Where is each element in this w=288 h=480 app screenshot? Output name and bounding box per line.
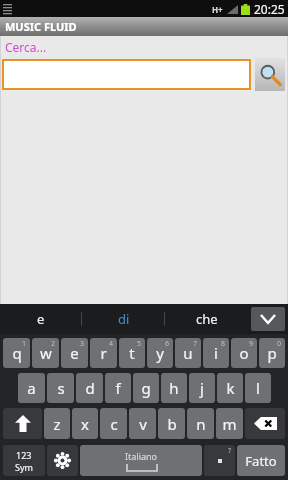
button[interactable]: Cerca <box>255 58 285 91</box>
staticText: z <box>53 414 61 434</box>
button[interactable]: di <box>82 304 165 334</box>
staticText: j <box>200 378 204 398</box>
staticText: p <box>267 343 277 363</box>
button[interactable]: m <box>216 408 243 439</box>
staticText: b <box>167 414 177 434</box>
button[interactable]: l <box>245 373 271 403</box>
button[interactable]: y <box>147 338 173 368</box>
button[interactable]: u <box>175 338 201 368</box>
button[interactable]: b <box>158 408 185 439</box>
button[interactable]: n <box>187 408 214 439</box>
staticText: che <box>196 310 218 328</box>
staticText: f <box>115 378 121 398</box>
button[interactable]: w <box>32 338 59 368</box>
button[interactable]: j <box>189 373 215 403</box>
staticText: Fatto <box>245 452 277 470</box>
staticText: 6 <box>165 339 170 349</box>
button[interactable]: Impostazioni <box>47 445 78 476</box>
button[interactable]: r <box>90 338 117 368</box>
staticText: u <box>183 343 193 363</box>
staticText: i <box>214 343 218 363</box>
staticText: e <box>37 310 45 328</box>
staticText: 7 <box>193 339 198 349</box>
button[interactable]: x <box>72 408 98 439</box>
staticText: s <box>57 378 65 398</box>
button[interactable]: z <box>44 408 70 439</box>
staticText: x <box>81 414 89 434</box>
staticText: h <box>169 378 179 398</box>
button[interactable]: c <box>100 408 127 439</box>
staticText: w <box>40 343 52 363</box>
staticText: 123 <box>16 449 32 461</box>
staticText: l <box>256 378 260 398</box>
button[interactable]: Spazio <box>80 445 202 476</box>
button[interactable]: Punto <box>204 445 235 476</box>
staticText: 1 <box>22 339 27 349</box>
staticText: v <box>139 414 147 434</box>
staticText: 0 <box>277 339 282 349</box>
staticText: 8 <box>221 339 226 349</box>
button[interactable]: e <box>61 338 88 368</box>
staticText: 9 <box>249 339 254 349</box>
button[interactable]: Altri suggerimenti <box>251 307 285 331</box>
staticText: d <box>85 378 95 398</box>
staticText: di <box>118 310 130 328</box>
staticText: g <box>141 378 151 398</box>
staticText: Sym <box>15 461 33 473</box>
button[interactable]: Fatto <box>237 445 285 476</box>
button[interactable]: q <box>3 338 30 368</box>
button[interactable]: h <box>161 373 187 403</box>
button[interactable]: t <box>119 338 145 368</box>
staticText: 3 <box>80 339 85 349</box>
staticText: y <box>156 343 164 363</box>
staticText: Cerca... <box>5 39 47 55</box>
button[interactable]: s <box>47 373 74 403</box>
staticText: q <box>12 343 22 363</box>
staticText: n <box>196 414 206 434</box>
button[interactable]: Maiuscole <box>3 408 42 439</box>
staticText: 20:25 <box>254 1 285 17</box>
staticText: m <box>222 414 237 434</box>
staticText: H+ <box>212 4 223 15</box>
button[interactable]: che <box>165 304 248 334</box>
button[interactable]: d <box>76 373 103 403</box>
staticText: e <box>70 343 79 363</box>
staticText: t <box>129 343 135 363</box>
button[interactable]: a <box>18 373 45 403</box>
staticText: 2 <box>51 339 56 349</box>
button[interactable]: i <box>203 338 229 368</box>
button[interactable]: p <box>259 338 285 368</box>
staticText: r <box>100 343 107 363</box>
button[interactable]: e <box>0 304 82 334</box>
staticText: 5 <box>137 339 142 349</box>
staticText: c <box>110 414 118 434</box>
button[interactable]: g <box>133 373 159 403</box>
staticText: a <box>27 378 36 398</box>
button[interactable]: Simboli <box>3 445 45 476</box>
staticText: Italiano <box>125 450 158 462</box>
staticText: ? <box>228 446 232 456</box>
button[interactable]: f <box>105 373 131 403</box>
staticText: MUSIC FLUID <box>5 19 77 34</box>
button[interactable]: Backspace <box>245 408 285 439</box>
button[interactable]: v <box>129 408 156 439</box>
staticText: 4 <box>109 339 114 349</box>
staticText: k <box>226 378 235 398</box>
button[interactable]: k <box>217 373 243 403</box>
button[interactable]: o <box>231 338 257 368</box>
staticText: o <box>239 343 249 363</box>
